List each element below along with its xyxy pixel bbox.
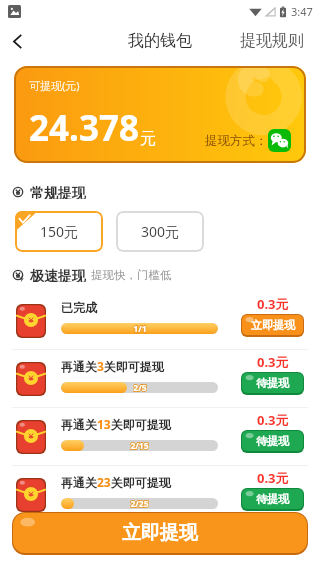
button[interactable]: 300元 bbox=[116, 211, 204, 252]
staticText: 我的钱包 bbox=[128, 31, 192, 51]
staticText: 常规提现 bbox=[30, 185, 86, 199]
staticText: 1/1 bbox=[133, 323, 147, 334]
staticText: 再通关13关即可提现 bbox=[61, 416, 171, 432]
staticText: 2/5 bbox=[133, 382, 147, 393]
staticText: 2/25 bbox=[130, 498, 149, 509]
button[interactable]: 立即提现 bbox=[242, 315, 303, 335]
button[interactable]: 立即提现 bbox=[13, 513, 307, 553]
staticText: 0.3元 bbox=[257, 353, 289, 371]
staticText: 再通关23关即可提现 bbox=[61, 474, 171, 490]
button[interactable]: 待提现 bbox=[242, 373, 303, 393]
staticText: 可提现(元) bbox=[29, 78, 80, 93]
staticText: 300元 bbox=[141, 222, 180, 241]
button[interactable]: 提现规则 bbox=[230, 22, 320, 60]
staticText: 2/25 bbox=[130, 498, 149, 509]
button[interactable]: WeChat bbox=[268, 129, 291, 152]
staticText: 150元 bbox=[40, 222, 79, 241]
button[interactable]: 再通关23关即可提现 bbox=[0, 466, 320, 524]
staticText: 待提现 bbox=[256, 434, 289, 448]
staticText: 待提现 bbox=[256, 376, 289, 390]
staticText: 提现快，门槛低 bbox=[91, 268, 172, 282]
staticText: 提现规则 bbox=[240, 31, 304, 51]
staticText: 3:47 bbox=[291, 4, 313, 19]
button[interactable]: 待提现 bbox=[242, 431, 303, 451]
staticText: 已完成 bbox=[61, 300, 97, 315]
button[interactable]: 可提现(元) bbox=[14, 66, 306, 163]
button[interactable]: 150元 bbox=[15, 211, 103, 252]
staticText: 再通关3关即可提现 bbox=[61, 358, 164, 374]
staticText: 2/5 bbox=[133, 382, 147, 393]
button[interactable]: Back bbox=[0, 22, 34, 60]
staticText: 待提现 bbox=[256, 492, 289, 506]
staticText: 立即提现 bbox=[251, 318, 295, 332]
button[interactable]: 再通关13关即可提现 bbox=[0, 408, 320, 466]
staticText: 0.3元 bbox=[257, 411, 289, 429]
staticText: 2/15 bbox=[130, 440, 149, 451]
button[interactable]: 已完成 bbox=[0, 292, 320, 350]
staticText: 0.3元 bbox=[257, 469, 289, 487]
staticText: 1/1 bbox=[133, 323, 147, 334]
staticText: 提现方式： bbox=[205, 133, 268, 149]
staticText: 元 bbox=[140, 129, 156, 149]
button[interactable]: 再通关3关即可提现 bbox=[0, 350, 320, 408]
staticText: 2/15 bbox=[130, 440, 149, 451]
staticText: 0.3元 bbox=[257, 295, 289, 313]
staticText: 立即提现 bbox=[122, 521, 198, 545]
staticText: 极速提现 bbox=[30, 268, 86, 282]
button[interactable]: 待提现 bbox=[242, 489, 303, 509]
staticText: 24.378 bbox=[29, 104, 139, 152]
